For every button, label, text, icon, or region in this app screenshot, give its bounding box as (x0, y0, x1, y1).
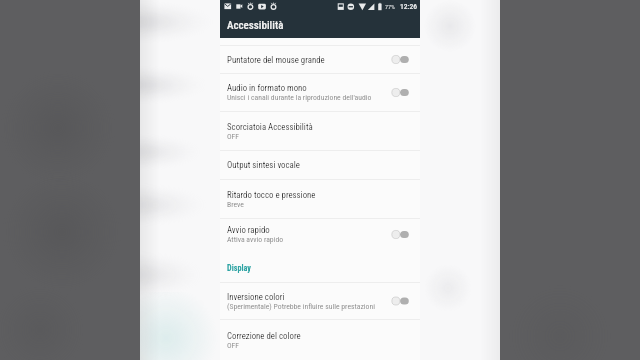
staticText: 77% (385, 3, 396, 10)
staticText: 12:26 (400, 2, 418, 11)
staticText: Display (227, 263, 251, 273)
button[interactable]: Correzione del colore (220, 319, 420, 360)
staticText: OFF (227, 132, 240, 141)
button[interactable]: Inversione colori (220, 282, 420, 319)
button[interactable]: Puntatore del mouse grande (394, 46, 420, 73)
staticText: Puntatore del mouse grande (227, 55, 325, 65)
staticText: Unisci i canali durante la riproduzione … (227, 93, 372, 102)
button[interactable]: Inversione colori (394, 283, 420, 319)
button[interactable]: Avvio rapido (394, 219, 420, 250)
staticText: Scorciatoia Accessibilità (227, 122, 313, 132)
button[interactable]: Audio in formato mono (220, 73, 420, 111)
button[interactable]: Avvio rapido (220, 218, 420, 250)
staticText: Attiva avvio rapido (227, 235, 284, 244)
staticText: Output sintesi vocale (227, 160, 300, 170)
staticText: Breve (227, 200, 244, 209)
button[interactable]: Audio in formato mono (394, 74, 420, 111)
staticText: OFF (227, 341, 240, 350)
button[interactable]: Puntatore del mouse grande (220, 45, 420, 73)
button[interactable]: Output sintesi vocale (220, 150, 420, 179)
staticText: Ritardo tocco e pressione (227, 190, 316, 200)
staticText: (Sperimentale) Potrebbe influire sulle p… (227, 302, 375, 311)
button[interactable]: Scorciatoia Accessibilità (220, 111, 420, 150)
button[interactable]: Ritardo tocco e pressione (220, 179, 420, 218)
staticText: Correzione del colore (227, 331, 301, 341)
staticText: Avvio rapido (227, 225, 270, 235)
staticText: Audio in formato mono (227, 83, 307, 93)
staticText: Accessibilità (227, 19, 284, 32)
staticText: Inversione colori (227, 292, 285, 302)
